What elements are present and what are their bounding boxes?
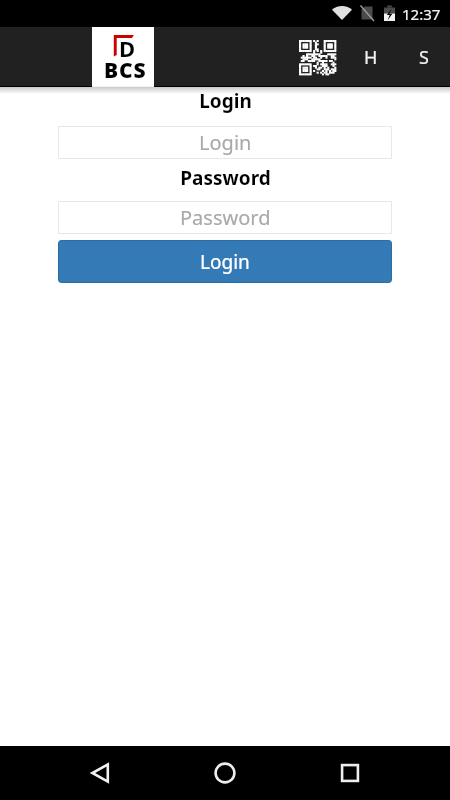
button[interactable]: BCS logo [92, 27, 154, 87]
staticText: S [419, 45, 429, 70]
button[interactable]: Recent apps [325, 746, 375, 800]
button[interactable]: Back [75, 746, 125, 800]
button[interactable]: S [397, 27, 450, 87]
staticText: H [364, 45, 378, 70]
staticText: Login [199, 88, 252, 113]
staticText: Login [200, 249, 250, 275]
button[interactable]: H [344, 27, 397, 87]
staticText: 12:37 [402, 4, 441, 24]
staticText: Password [180, 165, 271, 190]
staticText: Login [199, 129, 252, 156]
button[interactable]: Scan QR code [290, 27, 344, 87]
button[interactable]: Login [58, 126, 392, 159]
button[interactable]: Password [58, 201, 392, 234]
staticText: Password [180, 204, 271, 231]
staticText: BCS [104, 56, 147, 85]
staticText: D [119, 33, 136, 63]
button[interactable]: Home [200, 746, 250, 800]
button[interactable]: Login [58, 240, 392, 283]
